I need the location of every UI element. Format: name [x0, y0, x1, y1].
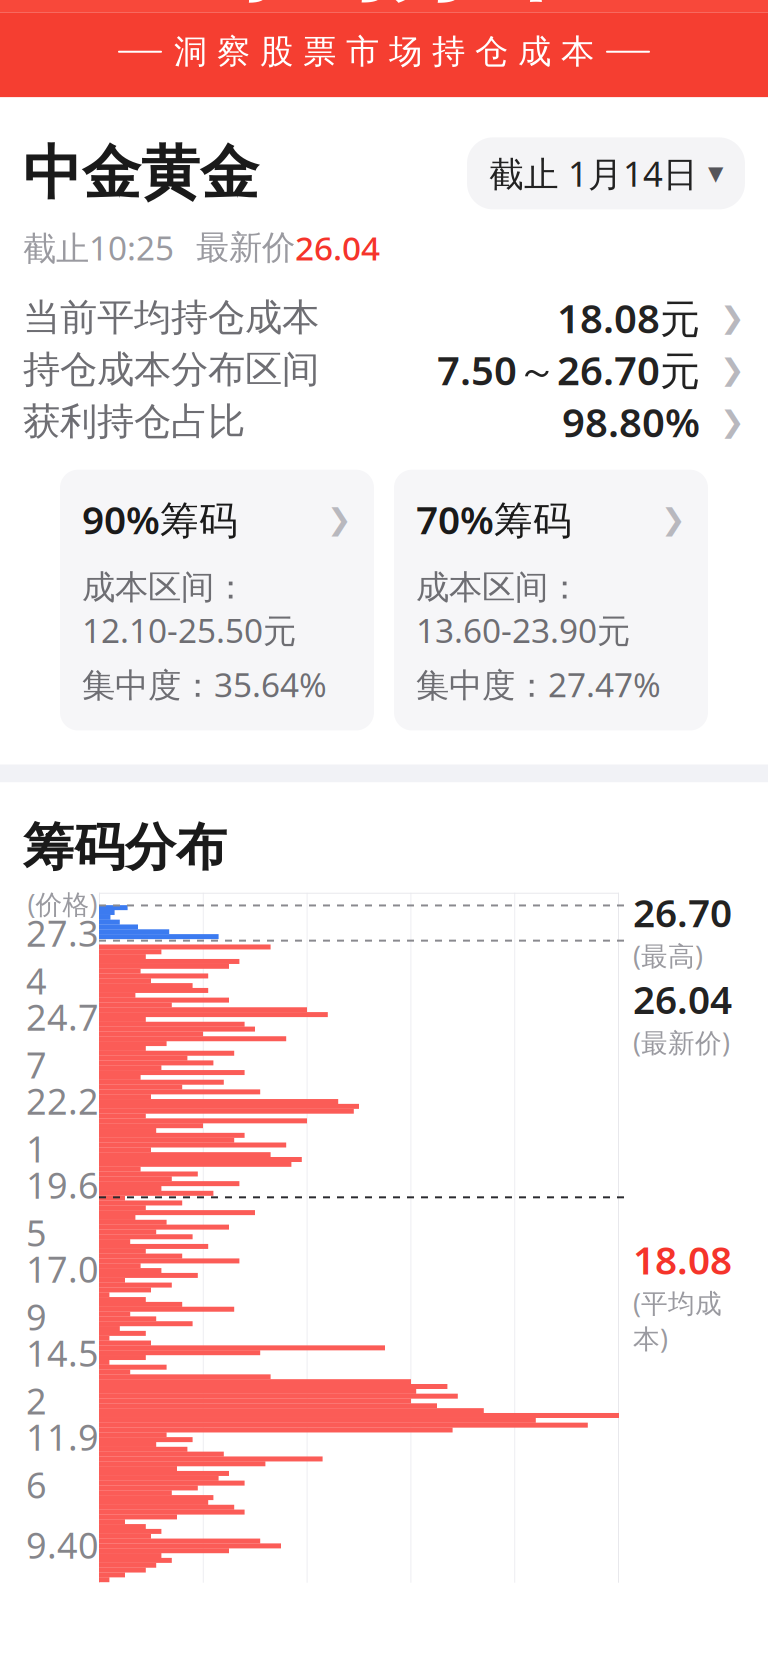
- staticText: 截止10:25: [23, 225, 174, 270]
- staticText: 最新价: [196, 227, 295, 268]
- staticText: (最高): [633, 938, 703, 973]
- staticText: 获利持仓占比: [23, 399, 245, 445]
- staticText: ▼: [708, 162, 723, 185]
- button[interactable]: 截止 1月14日: [467, 137, 745, 209]
- staticText: 成本区间：12.10-25.50元: [82, 567, 296, 652]
- staticText: 18.08元: [557, 291, 700, 344]
- staticText: 26.04: [633, 973, 732, 1024]
- staticText: ❯: [327, 503, 352, 536]
- staticText: 24.77: [26, 993, 99, 1088]
- staticText: 17.09: [26, 1245, 99, 1340]
- staticText: ❯: [661, 503, 686, 536]
- staticText: 27.34: [26, 909, 99, 1004]
- button[interactable]: 当前平均持仓成本: [0, 292, 768, 344]
- staticText: 持仓成本分布区间: [23, 347, 319, 393]
- staticText: 成本区间：13.60-23.90元: [416, 567, 630, 652]
- staticText: 当前平均持仓成本: [23, 295, 319, 341]
- staticText: 26.70: [633, 886, 732, 938]
- staticText: ❯: [720, 405, 745, 438]
- staticText: 22.21: [26, 1077, 99, 1172]
- button[interactable]: 70%筹码: [394, 470, 708, 730]
- staticText: 98.80%: [562, 395, 700, 448]
- staticText: 90%筹码: [82, 494, 238, 545]
- staticText: ❯: [720, 353, 745, 386]
- staticText: 14.52: [26, 1329, 99, 1424]
- button[interactable]: 持仓成本分布区间: [0, 344, 768, 396]
- staticText: 19.65: [26, 1161, 99, 1256]
- staticText: 9.40: [26, 1521, 99, 1569]
- staticText: (最新价): [633, 1025, 730, 1060]
- staticText: 洞 察 股 票 市 场 持 仓 成 本: [174, 31, 594, 72]
- staticText: 集中度：27.47%: [416, 662, 661, 706]
- staticText: 11.96: [26, 1413, 99, 1508]
- staticText: 中金黄金: [23, 137, 259, 209]
- staticText: 18.08: [633, 1234, 732, 1285]
- staticText: 7.50～26.70元: [437, 343, 700, 396]
- staticText: 筹码分布: [23, 816, 227, 879]
- staticText: ❯: [720, 301, 745, 334]
- staticText: 筹码分布: [192, 0, 576, 17]
- staticText: 集中度：35.64%: [82, 662, 327, 706]
- staticText: (价格): [27, 886, 97, 921]
- staticText: (平均成本): [633, 1285, 722, 1356]
- staticText: 截止 1月14日: [489, 150, 698, 196]
- staticText: 26.04: [295, 225, 380, 270]
- button[interactable]: 获利持仓占比: [0, 396, 768, 448]
- button[interactable]: 90%筹码: [60, 470, 374, 730]
- staticText: 70%筹码: [416, 494, 572, 545]
